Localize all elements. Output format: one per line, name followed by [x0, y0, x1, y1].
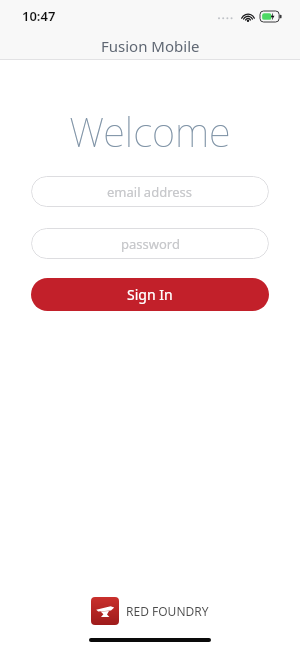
button[interactable]: password	[31, 228, 269, 259]
staticText: Sign In	[127, 285, 173, 304]
staticText: email address	[107, 183, 193, 201]
staticText: password	[121, 235, 180, 253]
other: Red Foundry logo	[91, 597, 119, 625]
staticText: RED FOUNDRY	[126, 603, 209, 619]
staticText: Fusion Mobile	[101, 36, 200, 56]
staticText: Welcome	[69, 104, 231, 158]
staticText: 10:47	[22, 7, 56, 25]
button[interactable]: email address	[31, 176, 269, 207]
button[interactable]: Red Foundry logo	[91, 597, 209, 625]
button[interactable]: Sign In	[31, 278, 269, 311]
